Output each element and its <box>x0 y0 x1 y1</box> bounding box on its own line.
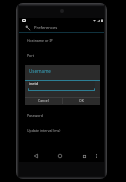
button[interactable]: Recents <box>79 151 89 161</box>
staticText: Username <box>29 68 51 74</box>
staticText: OK <box>79 98 84 103</box>
button[interactable]: Hostname or IP <box>19 33 104 48</box>
button[interactable]: Username <box>19 63 104 78</box>
button[interactable]: Password <box>19 108 104 123</box>
staticText: Update interval (ms) <box>27 128 61 133</box>
button[interactable]: Back <box>31 151 41 161</box>
staticText: Remote path <box>27 83 49 88</box>
staticText: inetd <box>29 81 39 86</box>
button[interactable]: Cancel <box>25 97 62 104</box>
button[interactable]: Protocol <box>19 93 104 108</box>
button[interactable]: inetd <box>28 81 95 91</box>
button[interactable]: Home <box>55 151 65 161</box>
button[interactable]: App icon <box>19 23 104 32</box>
button[interactable]: More options <box>91 151 101 161</box>
staticText: Port <box>27 53 34 58</box>
button[interactable]: Remote path <box>19 78 104 93</box>
button[interactable]: OK <box>63 97 100 104</box>
staticText: Password <box>27 113 43 118</box>
staticText: Cancel <box>38 98 49 103</box>
button[interactable]: Port <box>19 48 104 63</box>
other: App icon <box>25 25 31 31</box>
button[interactable]: Update interval (ms) <box>19 123 104 138</box>
staticText: Hostname or IP <box>27 38 53 43</box>
staticText: Username <box>27 68 45 73</box>
staticText: Preferences <box>34 25 58 31</box>
staticText: Protocol <box>27 98 41 103</box>
